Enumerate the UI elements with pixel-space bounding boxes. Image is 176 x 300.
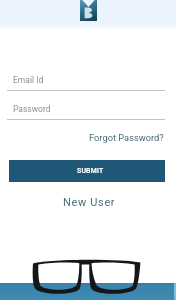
staticText: New User <box>63 196 116 209</box>
staticText: SUBMIT <box>77 167 104 175</box>
staticText: Password <box>13 104 51 114</box>
button[interactable]: New User <box>61 194 118 211</box>
staticText: Forgot Password? <box>89 132 164 143</box>
button[interactable]: Forgot Password? <box>87 130 166 145</box>
button[interactable]: SUBMIT <box>9 160 165 182</box>
staticText: Email Id <box>13 75 44 85</box>
